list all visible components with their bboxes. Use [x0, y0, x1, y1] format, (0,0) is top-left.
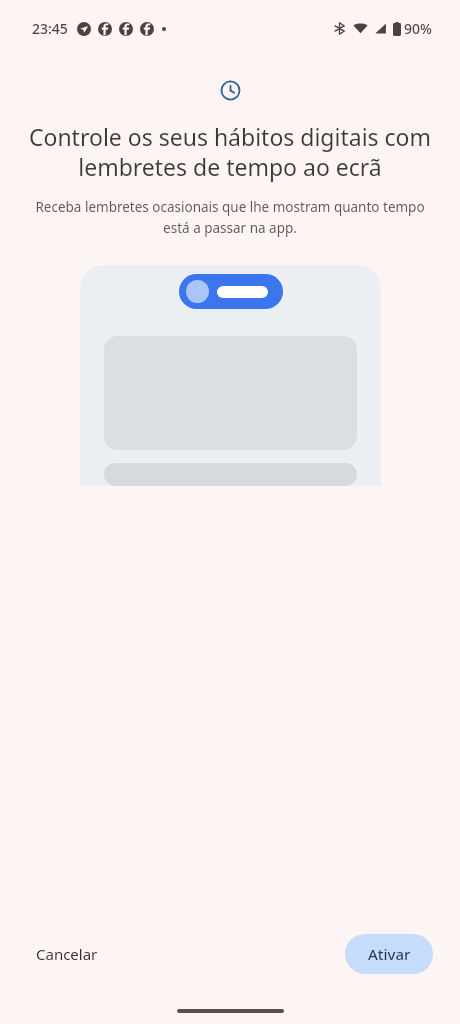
- button[interactable]: Cancelar: [22, 934, 112, 974]
- button[interactable]: Ativar: [345, 934, 433, 974]
- staticText: 90%: [404, 19, 432, 38]
- staticText: 23:45: [32, 19, 68, 38]
- staticText: Controle os seus hábitos digitais com le…: [28, 121, 432, 182]
- staticText: Ativar: [368, 944, 411, 964]
- staticText: Cancelar: [36, 944, 98, 964]
- staticText: Receba lembretes ocasionais que lhe most…: [26, 198, 434, 237]
